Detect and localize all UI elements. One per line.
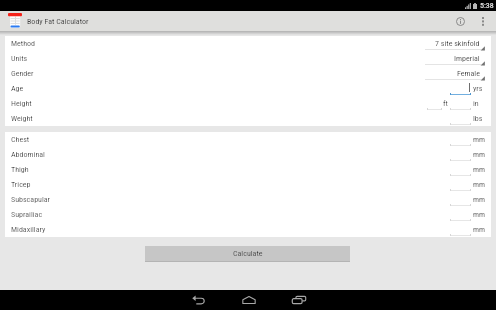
staticText: Subscapular [11, 195, 51, 204]
button[interactable]: Calculate [145, 246, 350, 261]
button[interactable]: Recent apps [280, 290, 317, 310]
staticText: mm [473, 150, 486, 159]
staticText: Calculate [233, 249, 263, 258]
staticText: mm [473, 165, 486, 174]
staticText: Abdominal [11, 150, 45, 159]
staticText: Gender [11, 69, 34, 78]
staticText: yrs [473, 84, 483, 93]
staticText: Thigh [11, 165, 29, 174]
button[interactable] [450, 133, 471, 146]
staticText: mm [473, 225, 486, 234]
staticText: 5:38 [480, 1, 494, 10]
staticText: mm [473, 180, 486, 189]
button[interactable]: Home [230, 290, 267, 310]
staticText: lbs [473, 114, 483, 123]
staticText: Midaxillary [11, 225, 46, 234]
staticText: mm [473, 135, 486, 144]
button[interactable] [450, 163, 471, 176]
button[interactable] [450, 82, 471, 95]
staticText: mm [473, 210, 486, 219]
button[interactable] [450, 148, 471, 161]
staticText: Tricep [11, 180, 31, 189]
button[interactable]: Info [449, 11, 472, 31]
staticText: ft [443, 99, 448, 108]
staticText: Female [457, 69, 480, 78]
button[interactable] [450, 112, 471, 125]
staticText: Suprailiac [11, 210, 43, 219]
staticText: Age [11, 84, 24, 93]
button[interactable] [450, 97, 471, 110]
staticText: 7 site skinfold [435, 39, 480, 48]
staticText: Imperial [454, 54, 480, 63]
button[interactable] [450, 193, 471, 206]
staticText: Chest [11, 135, 30, 144]
staticText: Weight [11, 114, 33, 123]
button[interactable]: 7 site skinfold [424, 36, 486, 51]
button[interactable]: Back [180, 290, 217, 310]
staticText: Method [11, 39, 36, 48]
staticText: Height [11, 99, 32, 108]
staticText: Units [11, 54, 28, 63]
button[interactable] [450, 223, 471, 236]
button[interactable] [450, 178, 471, 191]
staticText: in [473, 99, 479, 108]
button[interactable]: More options [472, 11, 494, 31]
button[interactable]: Female [424, 66, 486, 81]
staticText: Body Fat Calculator [27, 17, 89, 26]
staticText: mm [473, 195, 486, 204]
button[interactable] [427, 97, 442, 110]
button[interactable] [450, 208, 471, 221]
button[interactable]: Imperial [424, 51, 486, 66]
